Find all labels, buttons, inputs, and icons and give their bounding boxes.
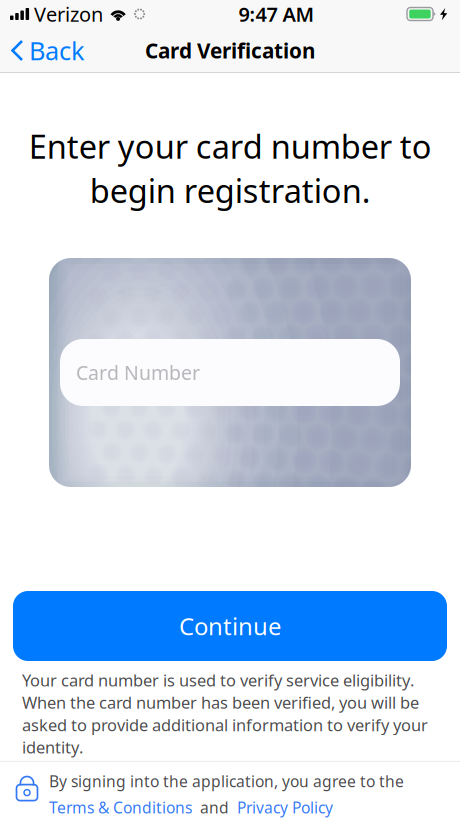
staticText: By signing into the application, you agr… <box>49 771 404 792</box>
button[interactable]: Back <box>0 26 95 75</box>
button[interactable]: Terms & Conditions <box>49 797 192 818</box>
staticText: Your card number is used to verify servi… <box>22 669 428 758</box>
staticText: Verizon <box>34 1 103 27</box>
staticText: and <box>192 797 237 818</box>
staticText: Back <box>29 34 85 67</box>
staticText: Privacy Policy <box>237 797 333 818</box>
staticText: 9:47 AM <box>239 1 315 27</box>
staticText: Enter your card number to begin registra… <box>28 124 431 213</box>
staticText: Card Verification <box>145 36 315 64</box>
staticText: Continue <box>179 610 281 642</box>
staticText: Card Number <box>76 359 200 386</box>
button[interactable]: Continue <box>13 591 447 661</box>
button[interactable]: Privacy Policy <box>237 797 333 818</box>
staticText: Terms & Conditions <box>49 797 192 818</box>
